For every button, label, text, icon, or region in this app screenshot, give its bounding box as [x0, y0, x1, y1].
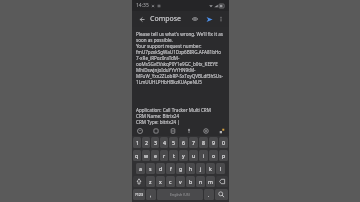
button[interactable]: 1	[133, 137, 141, 148]
button[interactable]: z	[146, 176, 155, 187]
button[interactable]: Shift	[133, 176, 145, 187]
staticText: 2	[145, 139, 148, 146]
button[interactable]: v	[176, 176, 185, 187]
staticText: j	[200, 165, 202, 172]
staticText: 5	[172, 139, 175, 146]
button[interactable]: m	[206, 176, 215, 187]
staticText: q	[135, 152, 139, 159]
button[interactable]: Emoji	[135, 126, 144, 135]
button[interactable]: l	[216, 163, 225, 174]
button[interactable]: Attach file	[189, 13, 201, 25]
button[interactable]: 4	[160, 137, 168, 148]
staticText: .	[208, 191, 210, 198]
staticText: soon as possible.	[136, 37, 173, 43]
staticText: fmU7pzxkSgWaU1Dzp6BIRG.AFA81bHo	[136, 49, 222, 55]
button[interactable]: n	[196, 176, 205, 187]
button[interactable]: 5	[169, 137, 178, 148]
staticText: o	[212, 152, 216, 159]
staticText: 1LmUUHLPHbHBkzKUApeNU5	[136, 79, 202, 85]
staticText: g	[179, 165, 183, 172]
staticText: f	[170, 165, 172, 172]
staticText: ?1⁠23	[135, 192, 144, 197]
staticText: 9	[212, 139, 215, 146]
button[interactable]: i	[199, 150, 208, 161]
staticText: a	[139, 165, 142, 172]
button[interactable]: y	[179, 150, 188, 161]
button[interactable]: Translate	[217, 126, 226, 135]
staticText: Your support request number:	[136, 43, 202, 49]
button[interactable]: English (US)	[157, 189, 203, 200]
staticText: y	[182, 152, 185, 159]
button[interactable]: ?1⁠23	[133, 189, 145, 200]
button[interactable]: 9	[209, 137, 218, 148]
button[interactable]: s	[146, 163, 155, 174]
button[interactable]: 6	[179, 137, 188, 148]
button[interactable]: r	[160, 150, 168, 161]
button[interactable]: x	[156, 176, 165, 187]
staticText: u	[192, 152, 196, 159]
staticText: l	[220, 165, 222, 172]
staticText: k	[209, 165, 212, 172]
button[interactable]: Backspace	[216, 176, 228, 187]
staticText: e	[154, 152, 157, 159]
staticText: 8	[202, 139, 205, 146]
button[interactable]: Send	[203, 13, 215, 25]
staticText: z	[149, 178, 152, 185]
button[interactable]: f	[166, 163, 175, 174]
button[interactable]: q	[133, 150, 141, 161]
button[interactable]: 2	[142, 137, 150, 148]
button[interactable]: u	[189, 150, 198, 161]
staticText: CRM Type: bitrix24 |	[136, 119, 180, 125]
button[interactable]: .	[204, 189, 214, 200]
button[interactable]: w	[142, 150, 150, 161]
button[interactable]: c	[166, 176, 175, 187]
button[interactable]: Settings	[201, 126, 210, 135]
staticText: MFuW_Yxx2ZLobRP-SxToyQVBLdf3hSUs-	[136, 73, 223, 79]
staticText: 7-xRe_iRPoz0raTdM-	[136, 55, 180, 61]
staticText: d	[159, 165, 163, 172]
staticText: x	[159, 178, 162, 185]
staticText: s	[149, 165, 152, 172]
button[interactable]: b	[186, 176, 195, 187]
button[interactable]: Clipboard	[168, 126, 177, 135]
staticText: CRM Name: Bitrix24	[136, 113, 180, 119]
button[interactable]: a	[136, 163, 145, 174]
staticText: 6	[182, 139, 185, 146]
staticText: ,	[150, 191, 152, 198]
button[interactable]: o	[209, 150, 218, 161]
staticText: m	[208, 178, 213, 185]
button[interactable]: Search	[215, 189, 228, 200]
button[interactable]: t	[169, 150, 178, 161]
button[interactable]: Voice input	[184, 126, 193, 135]
staticText: Please tell us what's wrong. We'll fix i…	[136, 31, 224, 37]
button[interactable]: More options	[216, 14, 226, 24]
button[interactable]: 0	[219, 137, 228, 148]
staticText: 14:35	[136, 2, 149, 9]
staticText: 4	[163, 139, 166, 146]
button[interactable]: d	[156, 163, 165, 174]
staticText: MhiDswjnjoIduYYvYHN9tM-	[136, 67, 196, 73]
button[interactable]: e	[151, 150, 159, 161]
staticText: t	[173, 152, 175, 159]
staticText: n	[199, 178, 203, 185]
button[interactable]: 3	[151, 137, 159, 148]
button[interactable]: j	[196, 163, 205, 174]
staticText: c	[169, 178, 172, 185]
button[interactable]: ,	[146, 189, 156, 200]
button[interactable]: p	[219, 150, 228, 161]
button[interactable]: 8	[199, 137, 208, 148]
staticText: p	[222, 152, 226, 159]
staticText: i	[203, 152, 205, 159]
button[interactable]: Stickers	[151, 126, 160, 135]
staticText: w	[144, 152, 149, 159]
button[interactable]: g	[176, 163, 185, 174]
button[interactable]: 7	[189, 137, 198, 148]
staticText: ooMsSGvEVskqP0Y1e9GC_b0tx_KEEYE	[136, 61, 218, 67]
button[interactable]: h	[186, 163, 195, 174]
staticText: Application: Call Tracker Multi CRM	[136, 107, 211, 113]
staticText: 3	[154, 139, 157, 146]
button[interactable]: k	[206, 163, 215, 174]
button[interactable]: Back	[135, 13, 147, 25]
staticText: v	[179, 178, 182, 185]
staticText: 7	[192, 139, 195, 146]
